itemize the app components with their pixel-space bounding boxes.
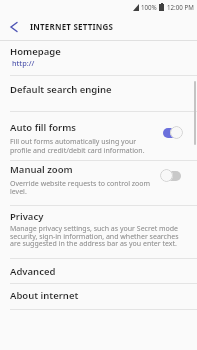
button[interactable]: Auto fill forms [0, 112, 197, 160]
staticText: 100% [141, 3, 157, 11]
staticText: INTERNET SETTINGS [30, 21, 114, 32]
button[interactable]: About internet [0, 284, 197, 309]
staticText: Homepage [10, 45, 61, 58]
staticText: Manual zoom [10, 163, 73, 176]
button[interactable]: Advanced [0, 259, 197, 283]
staticText: 12:00 PM [167, 3, 194, 11]
staticText: Advanced [10, 265, 56, 278]
button[interactable] [0, 14, 25, 39]
button[interactable] [160, 169, 183, 182]
staticText: Fill out forms automatically using your … [10, 137, 145, 155]
button[interactable]: Default search engine [0, 76, 197, 111]
staticText: About internet [10, 289, 79, 302]
staticText: Default search engine [10, 83, 112, 96]
staticText: Privacy [10, 210, 44, 223]
staticText: http:// [12, 58, 35, 68]
button[interactable] [160, 126, 183, 139]
staticText: Auto fill forms [10, 121, 77, 134]
staticText: Manage privacy settings, such as your Se… [10, 224, 179, 248]
button[interactable]: Privacy [0, 206, 197, 258]
staticText: Override website requests to control zoo… [10, 179, 151, 196]
button[interactable]: Manual zoom [0, 161, 197, 205]
button[interactable]: Homepage [0, 41, 197, 75]
